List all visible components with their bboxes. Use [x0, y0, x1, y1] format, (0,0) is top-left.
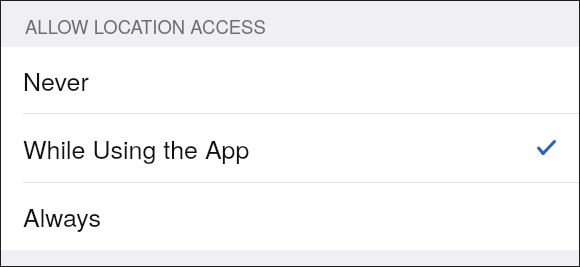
staticText: While Using the App — [23, 130, 250, 166]
button[interactable]: While Using the App — [1, 114, 579, 183]
staticText: Never — [23, 62, 89, 98]
staticText: Always — [23, 198, 101, 234]
button[interactable]: Always — [1, 183, 579, 250]
staticText: ALLOW LOCATION ACCESS — [25, 13, 266, 39]
button[interactable]: Never — [1, 47, 579, 114]
other: Selected — [537, 140, 556, 155]
